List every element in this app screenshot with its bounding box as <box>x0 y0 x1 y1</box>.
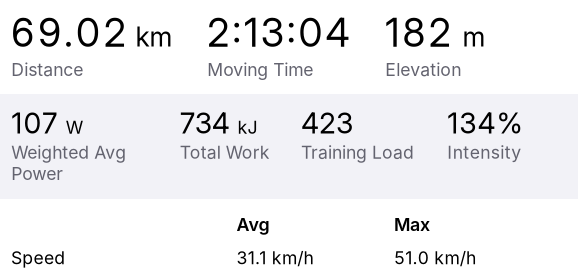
staticText: Total Work <box>180 142 270 163</box>
staticText: Moving Time <box>207 59 313 80</box>
staticText: Avg <box>236 214 269 235</box>
staticText: Weighted Avg Power <box>11 142 126 184</box>
staticText: Max <box>394 214 430 235</box>
staticText: 182 <box>385 9 451 56</box>
staticText: Elevation <box>385 59 461 80</box>
staticText: Speed <box>11 247 65 269</box>
staticText: m <box>462 21 485 53</box>
staticText: W <box>66 116 84 138</box>
staticText: km <box>136 21 173 53</box>
staticText: 51.0 km/h <box>394 247 476 269</box>
staticText: kJ <box>237 116 257 138</box>
staticText: 2:13:04 <box>207 9 349 56</box>
staticText: 31.1 km/h <box>236 247 313 269</box>
staticText: 107 <box>11 106 58 140</box>
staticText: Training Load <box>301 142 414 163</box>
staticText: Intensity <box>447 142 521 163</box>
staticText: 69.02 <box>11 9 126 56</box>
staticText: 423 <box>301 106 353 140</box>
staticText: 134% <box>447 106 523 140</box>
staticText: Distance <box>11 59 83 80</box>
staticText: 734 <box>180 106 230 140</box>
